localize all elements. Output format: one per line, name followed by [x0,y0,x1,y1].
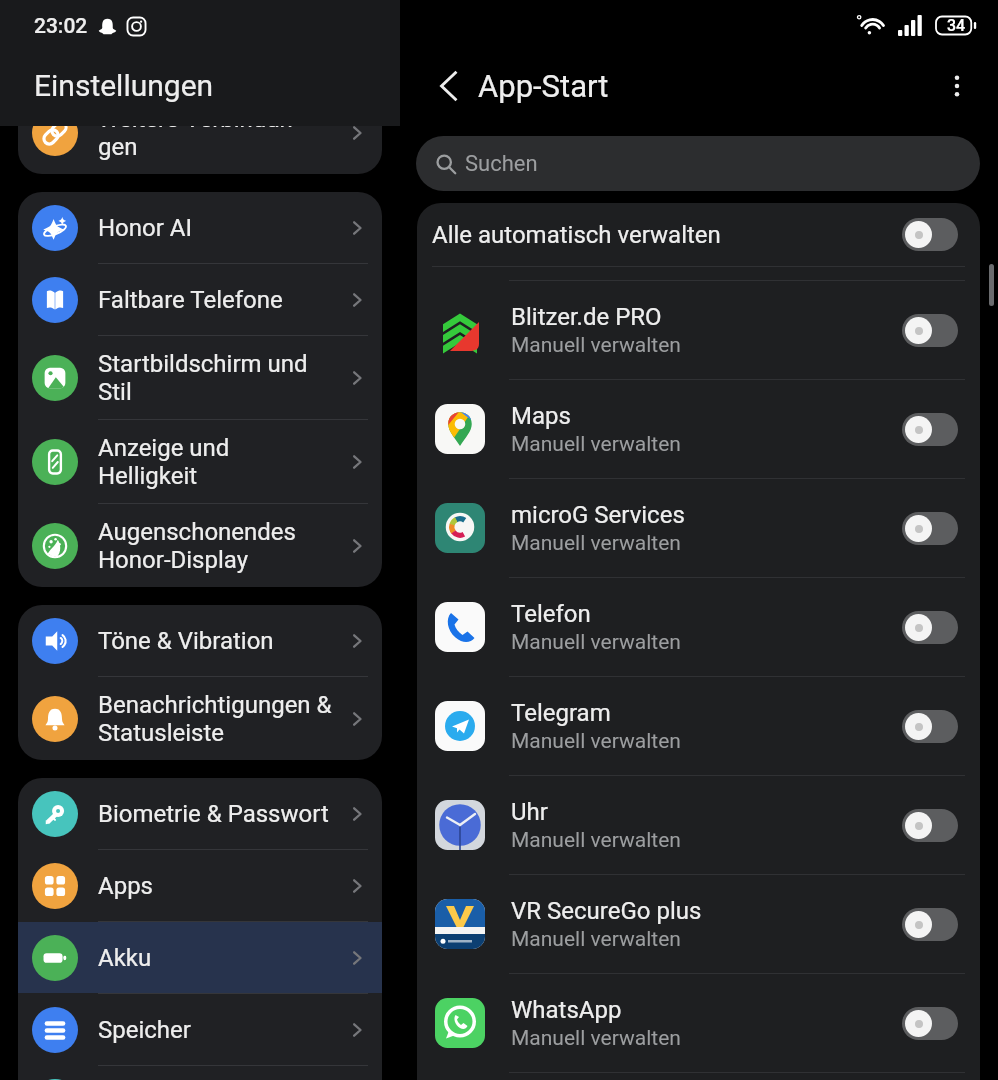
button[interactable]: Toggle [902,908,958,941]
staticText: Honor AI [98,214,332,242]
staticText: Akku [98,944,332,972]
button[interactable]: Anzeige und Helligkeit [18,420,382,503]
button[interactable]: Weitere Verbindun [18,91,382,174]
staticText: Manuell verwalten [511,729,681,754]
button[interactable]: Toggle [902,314,958,347]
button[interactable]: Sicherheit [18,1066,382,1080]
button[interactable]: Startbildschirm und Stil [18,336,382,419]
button[interactable]: More options [936,65,978,107]
staticText: VR SecureGo plus [511,897,702,925]
button[interactable]: Blitzer.de PRO [435,281,958,379]
staticText: WhatsApp [511,996,622,1024]
button[interactable]: Toggle [902,710,958,743]
staticText: Weitere Verbindun [98,105,293,133]
button[interactable]: Uhr [435,776,958,874]
button[interactable]: VR SecureGo plus [435,875,958,973]
staticText: 23:02 [34,14,88,39]
staticText: App-Start [478,68,609,104]
button[interactable]: microG Services [435,479,958,577]
button[interactable]: Speicher [18,994,382,1065]
staticText: Benachrichtigungen & Statusleiste [98,691,332,747]
staticText: Einstellungen [34,68,214,103]
staticText: 34 [947,16,966,35]
button[interactable]: Toggle [902,809,958,842]
staticText: Augenschonendes Honor-Display [98,518,332,574]
staticText: Manuell verwalten [511,1026,681,1051]
button[interactable]: Toggle [902,512,958,545]
button[interactable]: Suchen [416,136,980,191]
button[interactable]: Toggle [902,611,958,644]
staticText: Uhr [511,798,548,826]
staticText: Faltbare Telefone [98,286,332,314]
staticText: Manuell verwalten [511,630,681,655]
button[interactable]: Augenschonendes Honor-Display [18,504,382,587]
staticText: Töne & Vibration [98,627,332,655]
button[interactable]: Telegram [435,677,958,775]
button[interactable]: Akku [18,922,382,993]
staticText: Manuell verwalten [511,333,681,358]
button[interactable]: Alle automatisch verwalten [432,203,958,266]
staticText: Blitzer.de PRO [511,303,662,331]
button[interactable]: Toggle [902,1007,958,1040]
staticText: Manuell verwalten [511,432,681,457]
button[interactable]: Apps [18,850,382,921]
staticText: gen [98,133,138,161]
button[interactable]: Töne & Vibration [18,605,382,676]
staticText: microG Services [511,501,685,529]
button[interactable]: Toggle [902,413,958,446]
button[interactable]: Benachrichtigungen & Statusleiste [18,677,382,760]
staticText: Startbildschirm und Stil [98,350,332,406]
staticText: Apps [98,872,332,900]
button[interactable]: Telefon [435,578,958,676]
button[interactable]: WhatsApp [435,974,958,1072]
staticText: Suchen [465,151,538,177]
button[interactable]: Toggle [902,218,958,251]
button[interactable]: Back [428,65,470,107]
button[interactable]: Faltbare Telefone [18,264,382,335]
button[interactable]: Maps [435,380,958,478]
staticText: Telegram [511,699,611,727]
staticText: Maps [511,402,571,430]
staticText: Biometrie & Passwort [98,800,332,828]
button[interactable]: Honor AI [18,192,382,263]
staticText: Manuell verwalten [511,927,681,952]
staticText: Telefon [511,600,591,628]
staticText: Anzeige und Helligkeit [98,434,332,490]
staticText: Speicher [98,1016,332,1044]
staticText: Alle automatisch verwalten [432,221,902,249]
staticText: Manuell verwalten [511,531,681,556]
staticText: Manuell verwalten [511,828,681,853]
button[interactable]: Biometrie & Passwort [18,778,382,849]
